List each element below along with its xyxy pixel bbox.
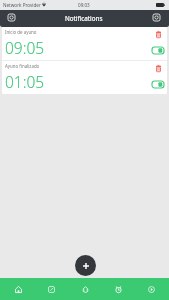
button[interactable]: Toggle notification — [152, 44, 164, 57]
staticText: 01:05 — [5, 71, 45, 92]
button[interactable]: Ayuno finalizado — [2, 61, 167, 94]
button[interactable]: Delete — [152, 27, 164, 41]
staticText: Ayuno finalizado — [5, 63, 40, 69]
staticText: Notifications — [65, 14, 103, 23]
button[interactable]: Inicio de ayuno — [2, 27, 167, 60]
button[interactable]: Toggle notification — [152, 78, 164, 91]
staticText: 09:05 — [5, 37, 45, 58]
button[interactable]: Add — [75, 255, 96, 276]
button[interactable]: Home — [3, 278, 33, 300]
button[interactable]: Notes — [36, 278, 66, 300]
button[interactable]: Delete — [152, 61, 164, 75]
button[interactable]: Food — [70, 278, 100, 300]
staticText: Network Provider — [3, 2, 41, 8]
button[interactable]: Alarms — [103, 278, 133, 300]
staticText: Inicio de ayuno — [5, 29, 37, 35]
button[interactable]: Open app — [150, 12, 163, 25]
button[interactable]: App logo — [5, 12, 18, 25]
staticText: 09:03 — [78, 2, 90, 8]
button[interactable]: Timer — [136, 278, 166, 300]
